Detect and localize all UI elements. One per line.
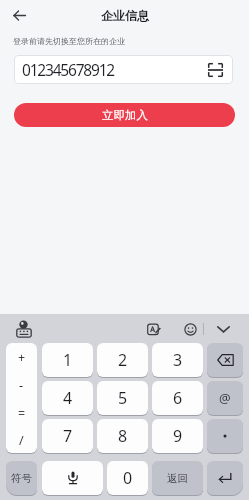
button[interactable] <box>6 2 32 28</box>
button[interactable] <box>207 343 243 377</box>
button[interactable]: - <box>6 371 37 399</box>
button[interactable] <box>207 419 243 453</box>
staticText: 8 <box>118 425 128 447</box>
button[interactable]: = <box>6 399 37 427</box>
button[interactable]: 0 <box>107 461 148 495</box>
button[interactable]: 3 <box>152 343 203 377</box>
staticText: 3 <box>173 349 183 371</box>
button[interactable]: 1 <box>42 343 93 377</box>
button[interactable]: + <box>6 343 37 453</box>
staticText: - <box>19 377 24 394</box>
button[interactable]: / <box>6 427 37 453</box>
button[interactable]: 9 <box>152 419 203 453</box>
staticText: 0 <box>123 467 133 489</box>
staticText: 返回 <box>167 472 188 485</box>
button[interactable] <box>210 317 236 341</box>
button[interactable] <box>141 317 167 341</box>
button[interactable] <box>207 461 243 495</box>
button[interactable] <box>207 62 223 78</box>
button[interactable]: 2 <box>97 343 148 377</box>
staticText: 符号 <box>11 472 32 485</box>
staticText: 9 <box>173 425 183 447</box>
staticText: 2 <box>118 349 128 371</box>
button[interactable] <box>178 317 202 341</box>
staticText: / <box>19 432 24 449</box>
staticText: 登录前请先切换至您所在的企业 <box>13 36 125 46</box>
staticText: 012345678912 <box>22 59 114 80</box>
staticText: 5 <box>118 387 128 409</box>
staticText: 企业信息 <box>101 8 149 23</box>
button[interactable]: 5 <box>97 381 148 415</box>
button[interactable]: 8 <box>97 419 148 453</box>
staticText: = <box>18 405 26 422</box>
button[interactable] <box>42 461 103 495</box>
staticText: 4 <box>63 387 73 409</box>
staticText: 6 <box>173 387 183 409</box>
staticText: 7 <box>63 425 73 447</box>
button[interactable]: 返回 <box>152 461 203 495</box>
staticText: 立即加入 <box>102 108 148 122</box>
staticText: 1 <box>63 349 73 371</box>
staticText: @ <box>219 389 231 407</box>
button[interactable]: 4 <box>42 381 93 415</box>
button[interactable]: + <box>6 343 37 371</box>
button[interactable]: 7 <box>42 419 93 453</box>
button[interactable]: @ <box>207 381 243 415</box>
button[interactable]: 012345678912 <box>14 55 233 84</box>
button[interactable]: 6 <box>152 381 203 415</box>
button[interactable] <box>10 316 38 342</box>
staticText: + <box>18 349 26 366</box>
button[interactable]: 符号 <box>6 461 37 495</box>
button[interactable]: 立即加入 <box>14 103 235 127</box>
